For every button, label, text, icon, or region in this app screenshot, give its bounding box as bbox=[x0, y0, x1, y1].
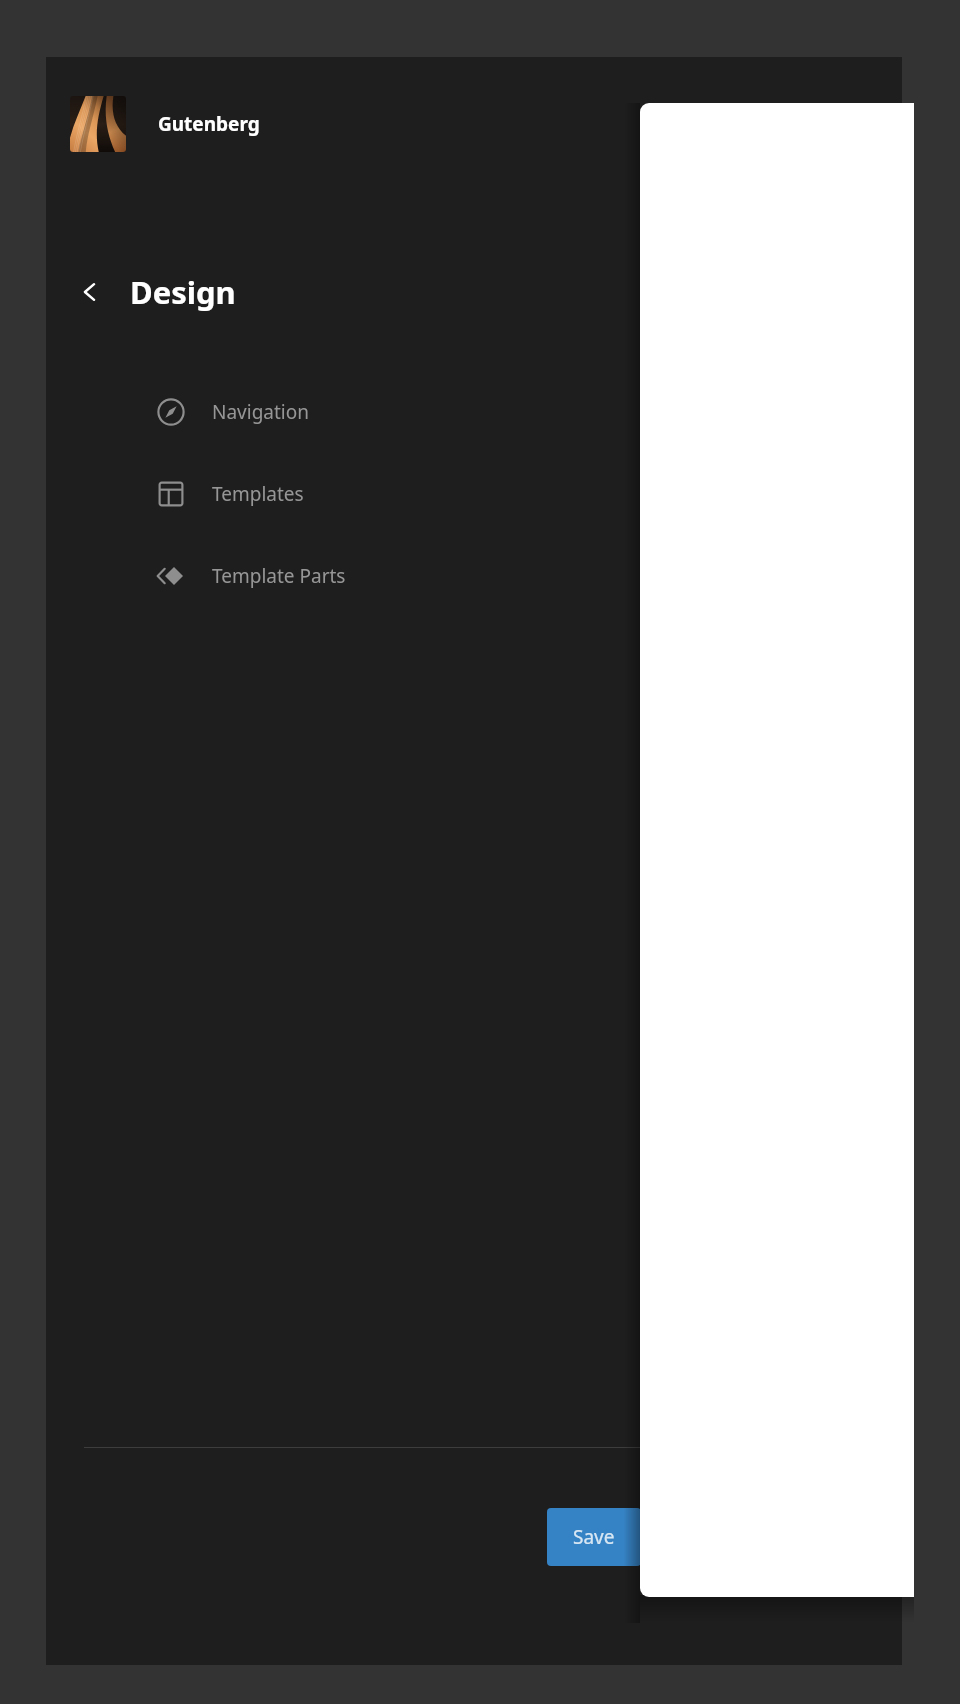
button[interactable]: Back bbox=[64, 266, 116, 318]
staticText: Navigation bbox=[212, 399, 309, 425]
button[interactable]: Save bbox=[547, 1508, 641, 1566]
staticText: Template Parts bbox=[212, 563, 346, 589]
staticText: Save bbox=[573, 1524, 615, 1550]
button[interactable]: Navigation bbox=[156, 375, 666, 449]
button[interactable]: Gutenberg bbox=[70, 94, 260, 154]
button[interactable]: Templates bbox=[156, 457, 666, 531]
staticText: Gutenberg bbox=[158, 111, 260, 137]
staticText: Design bbox=[130, 271, 236, 313]
staticText: Templates bbox=[212, 481, 304, 507]
button[interactable]: Template Parts bbox=[156, 539, 666, 613]
